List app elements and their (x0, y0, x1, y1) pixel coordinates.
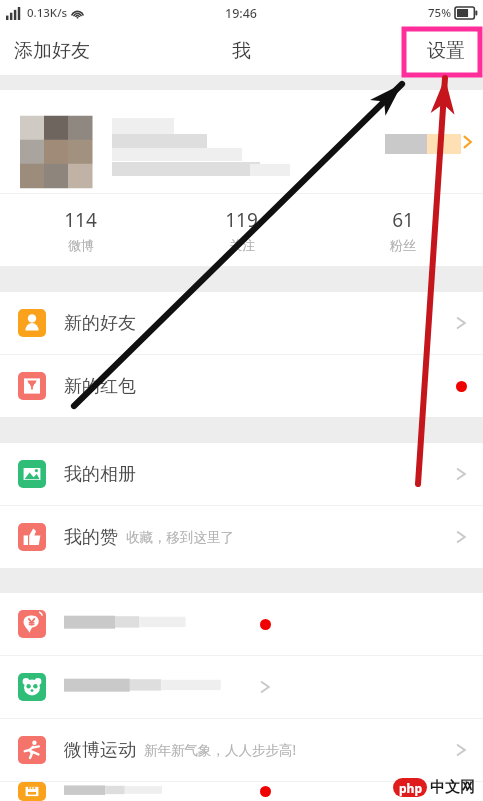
staticText: 我的相册 (64, 463, 136, 486)
staticText: 75% (428, 5, 451, 21)
button[interactable]: 微博钱包 (0, 593, 483, 655)
button[interactable]: 设置 (409, 31, 483, 71)
staticText: 设置 (427, 39, 465, 63)
button[interactable]: 我的赞 (0, 506, 483, 568)
staticText: 119 (225, 207, 258, 233)
staticText: 关注 (229, 237, 255, 253)
staticText: 粉丝 (390, 237, 416, 253)
button[interactable]: 添加好友 (0, 31, 104, 71)
button[interactable] (0, 90, 483, 193)
staticText: 中文网 (430, 778, 475, 797)
staticText: 新年新气象，人人步步高! (144, 741, 297, 759)
button[interactable]: 微博运动 (0, 719, 483, 781)
staticText: 收藏，移到这里了 (126, 529, 234, 546)
button[interactable]: 我的相册 (0, 443, 483, 505)
staticText: 61 (392, 207, 414, 233)
staticText: php (399, 780, 422, 796)
staticText: 我 (232, 39, 251, 63)
button[interactable]: 119 (161, 194, 322, 266)
button[interactable]: 会员中心 (0, 782, 483, 801)
button[interactable]: 新的好友 (0, 292, 483, 354)
button[interactable]: 微博故事 (0, 656, 483, 718)
button[interactable]: 114 (0, 194, 161, 266)
staticText: 114 (64, 207, 97, 233)
staticText: 微博运动 (64, 739, 136, 762)
button[interactable]: 新的红包 (0, 355, 483, 417)
staticText: 添加好友 (14, 39, 90, 63)
staticText: 0.13K/s (27, 5, 68, 21)
staticText: 微博 (68, 237, 94, 253)
staticText: 我的赞 (64, 526, 118, 549)
staticText: 新的红包 (64, 375, 136, 398)
staticText: 19:46 (225, 5, 258, 22)
button[interactable]: 61 (322, 194, 483, 266)
staticText: 新的好友 (64, 312, 136, 335)
